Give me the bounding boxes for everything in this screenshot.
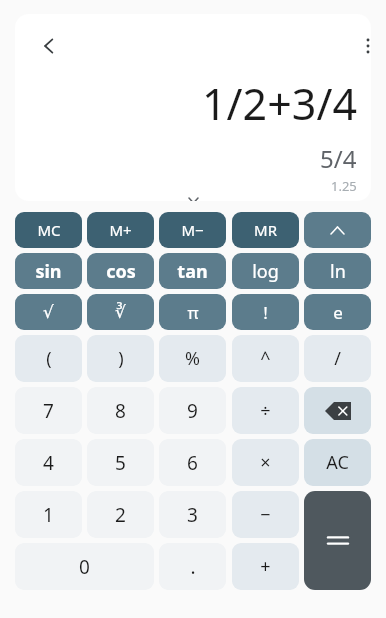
button[interactable]: tan <box>159 253 226 289</box>
staticText: MR <box>254 220 277 240</box>
staticText: 7 <box>43 398 54 424</box>
staticText: ^ <box>260 346 271 371</box>
staticText: . <box>190 554 196 580</box>
staticText: 2 <box>115 502 126 528</box>
staticText: + <box>260 554 271 579</box>
staticText: sin <box>35 259 62 284</box>
staticText: 8 <box>115 398 126 424</box>
button[interactable]: 8 <box>87 387 154 434</box>
staticText: AC <box>326 450 349 475</box>
button[interactable]: × <box>232 439 299 486</box>
button[interactable]: ln <box>304 253 371 289</box>
button[interactable]: MR <box>232 212 299 248</box>
button[interactable]: ( <box>15 335 82 382</box>
button[interactable]: Collapse history <box>173 192 213 201</box>
staticText: ( <box>46 346 52 371</box>
button[interactable]: sin <box>15 253 82 289</box>
button[interactable]: + <box>232 543 299 590</box>
staticText: M+ <box>109 220 132 240</box>
staticText: 9 <box>187 398 198 424</box>
staticText: × <box>260 450 271 475</box>
button[interactable]: . <box>159 543 226 590</box>
staticText: ! <box>263 301 268 324</box>
button[interactable]: 3 <box>159 491 226 538</box>
button[interactable]: 1 <box>15 491 82 538</box>
button[interactable]: 9 <box>159 387 226 434</box>
staticText: ) <box>118 346 124 371</box>
staticText: √ <box>43 302 54 322</box>
button[interactable]: − <box>232 491 299 538</box>
button[interactable]: Backspace <box>304 387 371 434</box>
button[interactable]: M+ <box>87 212 154 248</box>
button[interactable]: % <box>159 335 226 382</box>
staticText: ln <box>330 259 346 284</box>
button[interactable]: 7 <box>15 387 82 434</box>
staticText: M− <box>181 220 204 240</box>
button[interactable]: cos <box>87 253 154 289</box>
button[interactable]: 0 <box>15 543 154 590</box>
staticText: cos <box>106 259 136 284</box>
staticText: e <box>333 301 343 324</box>
staticText: 1/2+3/4 <box>202 74 357 133</box>
staticText: ÷ <box>260 398 271 423</box>
button[interactable]: / <box>304 335 371 382</box>
staticText: 5/4 <box>320 142 357 175</box>
staticText: tan <box>177 259 208 284</box>
staticText: % <box>185 346 200 371</box>
button[interactable]: ^ <box>232 335 299 382</box>
staticText: − <box>260 502 271 527</box>
staticText: log <box>252 259 279 284</box>
staticText: 4 <box>43 450 54 476</box>
button[interactable]: √ <box>15 294 82 330</box>
staticText: 3 <box>187 502 198 528</box>
staticText: / <box>334 346 341 371</box>
staticText: 1.25 <box>331 177 357 195</box>
staticText: 5 <box>115 450 126 476</box>
button[interactable]: MC <box>15 212 82 248</box>
button[interactable]: e <box>304 294 371 330</box>
button[interactable]: ! <box>232 294 299 330</box>
staticText: 1 <box>43 502 54 528</box>
staticText: 0 <box>79 554 90 580</box>
button[interactable]: Collapse functions <box>304 212 371 248</box>
button[interactable]: Equals <box>304 491 371 590</box>
button[interactable]: 6 <box>159 439 226 486</box>
staticText: 6 <box>187 450 198 476</box>
staticText: π <box>187 301 199 324</box>
staticText: MC <box>37 220 61 240</box>
button[interactable]: log <box>232 253 299 289</box>
button[interactable]: 4 <box>15 439 82 486</box>
button[interactable]: AC <box>304 439 371 486</box>
button[interactable]: Back <box>27 24 71 68</box>
button[interactable]: More options <box>346 24 371 68</box>
button[interactable]: 5 <box>87 439 154 486</box>
button[interactable]: ∛ <box>87 294 154 330</box>
button[interactable]: ) <box>87 335 154 382</box>
staticText: ∛ <box>115 302 126 322</box>
button[interactable]: ÷ <box>232 387 299 434</box>
button[interactable]: 2 <box>87 491 154 538</box>
button[interactable]: M− <box>159 212 226 248</box>
button[interactable]: π <box>159 294 226 330</box>
